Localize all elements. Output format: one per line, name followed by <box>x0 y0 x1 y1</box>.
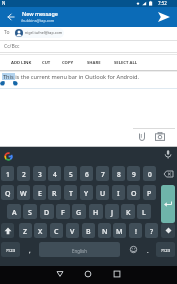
button[interactable]: ?123 <box>1 242 20 257</box>
staticText: R <box>52 189 57 199</box>
button[interactable]: C <box>50 223 63 238</box>
button[interactable]: 0 <box>143 166 156 181</box>
staticText: K <box>126 208 131 218</box>
button[interactable]: H <box>89 204 103 219</box>
button[interactable] <box>5 11 17 23</box>
staticText: English <box>72 248 87 254</box>
staticText: V <box>70 227 75 237</box>
staticText: SELECT ALL <box>114 60 138 66</box>
button[interactable]: , <box>23 242 36 257</box>
button[interactable]: J <box>105 204 119 219</box>
staticText: X <box>38 227 43 237</box>
staticText: 3 <box>38 170 42 179</box>
button[interactable]: P <box>143 185 156 200</box>
button[interactable]: Q <box>1 185 14 200</box>
button[interactable]: M <box>113 223 126 238</box>
staticText: New message <box>22 10 58 17</box>
button[interactable]: 3 <box>33 166 46 181</box>
button[interactable]: R <box>48 185 61 200</box>
button[interactable] <box>161 223 175 238</box>
staticText: . <box>147 247 149 255</box>
button[interactable]: SHARE <box>87 57 101 63</box>
button[interactable]: 7 <box>96 166 109 181</box>
staticText: 8 <box>117 170 121 179</box>
staticText: ! <box>135 227 137 237</box>
button[interactable]: Y <box>80 185 93 200</box>
button[interactable]: G <box>72 204 86 219</box>
button[interactable]: ADD LINK <box>11 57 32 63</box>
button[interactable]: I <box>112 185 125 200</box>
staticText: To <box>4 29 10 36</box>
button[interactable]: Z <box>19 223 32 238</box>
staticText: ? <box>150 227 154 237</box>
button[interactable]: SELECT ALL <box>114 57 138 63</box>
button[interactable]: 9 <box>127 166 140 181</box>
button[interactable]: ?123 <box>156 242 175 257</box>
button[interactable] <box>53 267 67 281</box>
button[interactable]: . <box>141 242 154 257</box>
button[interactable] <box>110 267 124 281</box>
button[interactable]: L <box>137 204 151 219</box>
button[interactable]: 6 <box>80 166 93 181</box>
button[interactable]: U <box>96 185 109 200</box>
staticText: J <box>111 208 114 218</box>
button[interactable]: T <box>64 185 77 200</box>
button[interactable] <box>81 267 95 281</box>
staticText: This is the current menu bar in Outlook … <box>3 73 140 81</box>
staticText: B <box>86 227 91 237</box>
staticText: 2 <box>22 170 26 179</box>
staticText: COPY <box>62 60 74 66</box>
button[interactable] <box>4 152 13 161</box>
button[interactable] <box>154 131 166 142</box>
button[interactable]: ? <box>145 223 158 238</box>
button[interactable]: O <box>127 185 140 200</box>
button[interactable]: 4 <box>48 166 61 181</box>
button[interactable] <box>127 242 140 257</box>
button[interactable]: 2 <box>17 166 30 181</box>
staticText: Cc/Bcc <box>4 43 20 50</box>
staticText: ihubbins@tap.com <box>21 18 55 23</box>
staticText: 7 <box>101 170 105 179</box>
button[interactable]: X <box>34 223 47 238</box>
staticText: H <box>93 208 99 218</box>
staticText: M <box>116 227 123 237</box>
staticText: 4 <box>53 170 57 179</box>
staticText: ADD LINK <box>11 60 32 66</box>
button[interactable]: COPY <box>62 57 74 63</box>
staticText: U <box>100 189 106 199</box>
button[interactable] <box>161 166 175 181</box>
button[interactable]: CUT <box>42 57 51 63</box>
staticText: O <box>131 189 137 199</box>
button[interactable]: ! <box>129 223 142 238</box>
staticText: I <box>117 189 120 199</box>
button[interactable]: 8 <box>112 166 125 181</box>
staticText: F <box>61 208 65 218</box>
staticText: nigel.tufnel@tap.com <box>25 30 63 35</box>
staticText: SHARE <box>87 60 101 66</box>
button[interactable]: V <box>66 223 79 238</box>
button[interactable]: 1 <box>1 166 14 181</box>
staticText: W <box>20 189 27 199</box>
staticText: , <box>29 247 31 255</box>
button[interactable] <box>157 11 172 23</box>
button[interactable] <box>14 28 64 38</box>
button[interactable]: K <box>121 204 135 219</box>
staticText: Z <box>23 227 28 237</box>
button[interactable]: S <box>23 204 37 219</box>
button[interactable]: N <box>98 223 111 238</box>
staticText: D <box>44 208 50 218</box>
button[interactable]: English <box>39 242 120 257</box>
button[interactable] <box>137 131 148 142</box>
button[interactable]: 5 <box>64 166 77 181</box>
button[interactable]: B <box>82 223 95 238</box>
button[interactable]: W <box>17 185 30 200</box>
button[interactable]: F <box>56 204 70 219</box>
button[interactable]: A <box>7 204 21 219</box>
staticText: 7:52 <box>158 0 167 6</box>
button[interactable] <box>163 149 173 160</box>
button[interactable] <box>161 185 175 223</box>
button[interactable]: D <box>40 204 54 219</box>
button[interactable] <box>1 223 14 238</box>
button[interactable]: E <box>33 185 46 200</box>
staticText: G <box>76 208 82 218</box>
